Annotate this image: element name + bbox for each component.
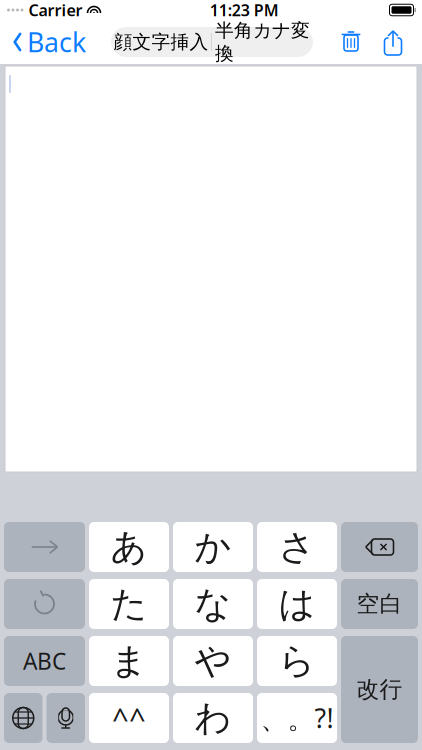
staticText: 、。?!	[260, 700, 333, 736]
staticText: た	[110, 582, 147, 626]
staticText: か	[194, 525, 231, 569]
button[interactable]: Back	[0, 20, 94, 64]
staticText: や	[194, 639, 231, 683]
button[interactable]: ら	[257, 636, 337, 686]
staticText: ^^	[112, 698, 146, 737]
button[interactable]: Next candidate	[4, 522, 85, 572]
staticText: ま	[110, 639, 147, 683]
staticText: Carrier	[28, 0, 82, 21]
button[interactable]: や	[173, 636, 253, 686]
button[interactable]: Dictation	[46, 693, 85, 743]
staticText: わ	[194, 696, 231, 740]
staticText: ら	[278, 639, 315, 683]
staticText: さ	[278, 525, 315, 569]
staticText: ABC	[23, 646, 66, 676]
button[interactable]: わ	[173, 693, 253, 743]
staticText: 改行	[356, 676, 402, 703]
button[interactable]: Undo	[4, 579, 85, 629]
button[interactable]: ^^	[89, 693, 169, 743]
button[interactable]: あ	[89, 522, 169, 572]
button[interactable]: 顔文字挿入	[111, 27, 211, 57]
button[interactable]: 空白	[341, 579, 418, 629]
button[interactable]: た	[89, 579, 169, 629]
button[interactable]: な	[173, 579, 253, 629]
button[interactable]: 改行	[341, 636, 418, 743]
staticText: 11:23 PM	[210, 0, 279, 21]
button[interactable]: Delete	[330, 20, 372, 64]
button[interactable]: さ	[257, 522, 337, 572]
button[interactable]: Share	[372, 20, 414, 64]
staticText: は	[278, 582, 315, 626]
button[interactable]: か	[173, 522, 253, 572]
button[interactable]: ABC	[4, 636, 85, 686]
staticText: 空白	[356, 590, 402, 618]
button[interactable]: 半角カナ変換	[212, 27, 313, 57]
staticText: Back	[27, 24, 86, 60]
staticText: な	[194, 582, 231, 626]
button[interactable]: は	[257, 579, 337, 629]
button[interactable]: Delete	[341, 522, 418, 572]
staticText: あ	[110, 525, 147, 569]
staticText: 顔文字挿入	[113, 30, 208, 53]
button[interactable]: Next keyboard	[4, 693, 42, 743]
button[interactable]: ま	[89, 636, 169, 686]
button[interactable]: 、。?!	[257, 693, 337, 743]
staticText: 半角カナ変換	[215, 19, 310, 65]
